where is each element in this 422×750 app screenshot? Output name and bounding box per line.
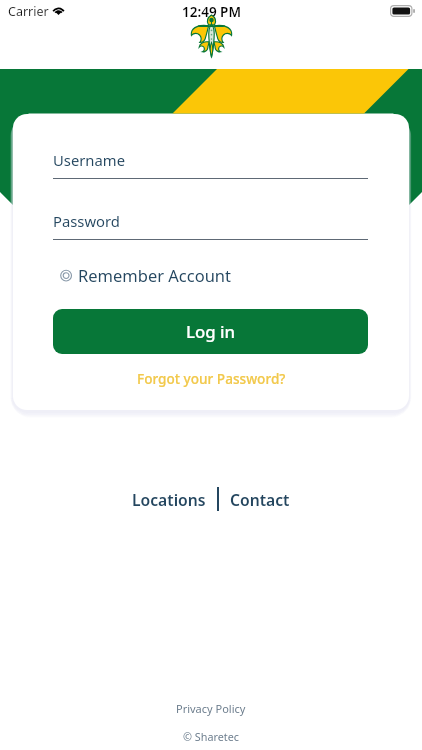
button[interactable]: Username bbox=[53, 150, 368, 179]
button[interactable]: Remember Account bbox=[57, 264, 232, 286]
button[interactable]: Forgot your Password? bbox=[137, 369, 286, 388]
staticText: © Sharetec bbox=[183, 729, 239, 744]
button[interactable]: Contact bbox=[230, 489, 290, 510]
button[interactable]: Privacy Policy bbox=[176, 701, 246, 716]
staticText: Remember Account bbox=[78, 264, 232, 286]
staticText: Log in bbox=[186, 320, 236, 343]
staticText: Password bbox=[53, 211, 120, 231]
staticText: Carrier bbox=[8, 3, 49, 20]
button[interactable]: Log in bbox=[53, 309, 368, 354]
button[interactable]: Locations bbox=[132, 489, 206, 510]
button[interactable]: Password bbox=[53, 211, 368, 240]
staticText: Username bbox=[53, 150, 125, 170]
staticText: 12:49 PM bbox=[182, 3, 241, 21]
